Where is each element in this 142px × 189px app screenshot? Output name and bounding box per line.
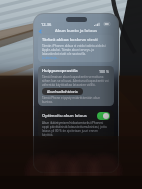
button[interactable]: Back (37, 28, 43, 34)
staticText: Tärkeä akkua koskeva viesti (42, 37, 98, 43)
staticText: Lisätietoja... (42, 56, 59, 60)
staticText: Tämä ilmaisee akun kapasiteetin verrattu… (42, 75, 110, 87)
button[interactable]: Lisätietoja... (42, 56, 59, 60)
staticText: Tämä iPhone ei pysty määrittämään akun k… (42, 96, 110, 104)
staticText: Huippunopeustila (42, 68, 78, 74)
button[interactable]: Huippunopeustila (42, 68, 110, 74)
staticText: Akun kunto ja lataus (55, 28, 98, 34)
staticText: 12.36 (41, 22, 52, 27)
staticText: Akunhuoltohistoria (47, 89, 78, 94)
staticText: 100 % (99, 69, 110, 74)
staticText: Tämän iPhonen akkua ei voida todeta aido… (42, 44, 110, 56)
staticText: Akun ikääntymisen hidastamiseksi iPhones… (42, 121, 110, 137)
button[interactable]: Akunhuoltohistoria (47, 89, 78, 94)
button[interactable]: Optimoitu akun lataus (42, 112, 110, 120)
staticText: Optimoitu akun lataus (42, 113, 87, 119)
